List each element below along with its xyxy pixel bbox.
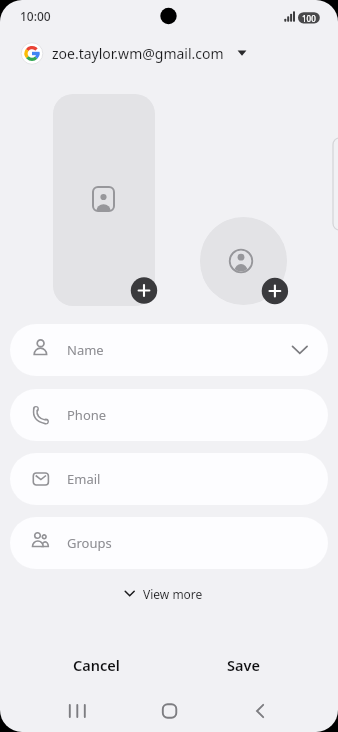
staticText: Save bbox=[227, 655, 260, 675]
button[interactable] bbox=[147, 693, 191, 729]
button[interactable] bbox=[238, 693, 282, 729]
button[interactable]: Name bbox=[10, 324, 328, 376]
button[interactable]: Save bbox=[188, 648, 298, 682]
button[interactable] bbox=[14, 39, 259, 67]
staticText: Phone bbox=[67, 406, 107, 424]
button[interactable]: Groups bbox=[10, 517, 328, 569]
button[interactable]: Cancel bbox=[41, 648, 151, 682]
staticText: Cancel bbox=[73, 655, 120, 675]
button[interactable] bbox=[200, 217, 287, 305]
staticText: View more bbox=[143, 586, 203, 602]
button[interactable] bbox=[53, 94, 155, 306]
button[interactable] bbox=[55, 693, 99, 729]
button[interactable]: View more bbox=[110, 579, 228, 609]
staticText: 100 bbox=[302, 13, 316, 24]
button[interactable]: Phone bbox=[10, 389, 328, 441]
staticText: zoe.taylor.wm@gmail.com bbox=[52, 44, 224, 63]
staticText: Email bbox=[67, 470, 101, 488]
staticText: Name bbox=[67, 341, 104, 359]
staticText: Groups bbox=[67, 534, 112, 552]
button[interactable]: Email bbox=[10, 453, 328, 505]
staticText: 10:00 bbox=[20, 8, 51, 24]
